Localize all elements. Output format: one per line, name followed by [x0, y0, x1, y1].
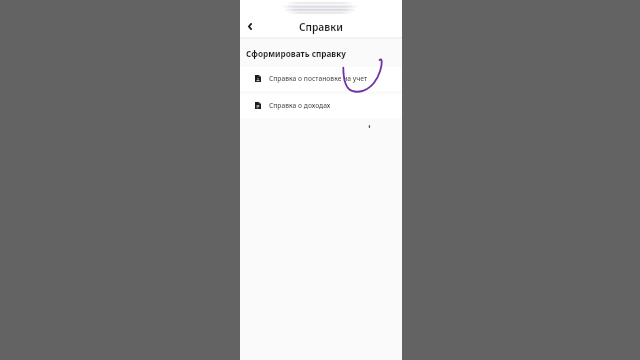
staticText: Сформировать справку	[246, 48, 346, 59]
button[interactable]: Справка о доходах	[240, 94, 402, 118]
staticText: Справка о постановке на учет	[269, 74, 368, 83]
button[interactable]: Справка о постановке на учет	[240, 67, 402, 91]
staticText: Справки	[299, 20, 343, 34]
staticText: Справка о доходах	[269, 101, 331, 110]
button[interactable]: Back	[241, 18, 258, 35]
